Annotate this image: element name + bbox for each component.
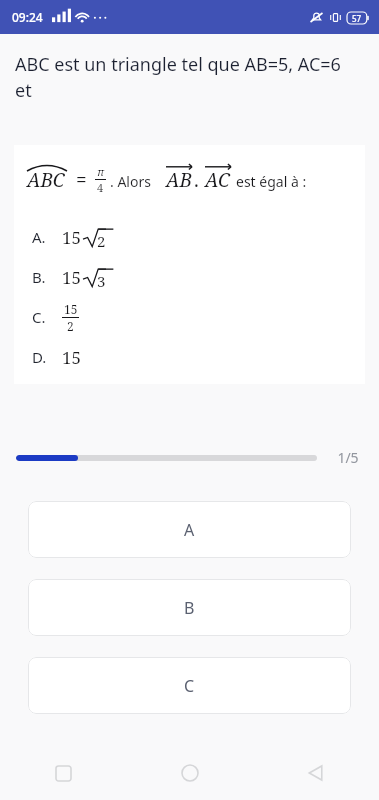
staticText: est égal à : (236, 172, 307, 191)
button[interactable]: C (28, 657, 351, 714)
staticText: = (76, 167, 87, 193)
staticText: 2 (97, 231, 106, 251)
staticText: ABC (27, 167, 65, 193)
staticText: 2 (67, 318, 74, 334)
staticText: D. (32, 347, 47, 367)
button[interactable]: Recent apps (0, 746, 127, 800)
staticText: AC (205, 167, 230, 193)
button[interactable]: A (28, 501, 351, 558)
staticText: . (194, 167, 199, 193)
staticText: 3 (97, 271, 106, 291)
staticText: 15 (62, 226, 82, 249)
staticText: A (184, 519, 195, 541)
staticText: C (184, 675, 195, 697)
staticText: 1/5 (331, 448, 365, 467)
staticText: B. (32, 267, 46, 287)
staticText: 15 (62, 266, 82, 289)
staticText: B (184, 597, 195, 619)
staticText: AB (166, 167, 192, 193)
staticText: C. (32, 307, 46, 327)
staticText: π (97, 164, 105, 179)
staticText: 09:24 (12, 9, 43, 25)
staticText: 57 (352, 13, 362, 24)
staticText: 4 (97, 180, 104, 195)
button[interactable]: B (28, 579, 351, 636)
staticText: A. (32, 227, 46, 247)
staticText: 15 (64, 301, 78, 317)
staticText: . Alors (110, 172, 151, 191)
button[interactable]: Home (127, 746, 253, 800)
staticText: 15 (62, 346, 82, 369)
button[interactable]: Back (253, 746, 379, 800)
staticText: ABC est un triangle tel que AB=5, AC=6 e… (15, 52, 361, 103)
